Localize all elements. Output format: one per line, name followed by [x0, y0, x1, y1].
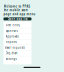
- staticText: Reports: [5, 40, 16, 44]
- button[interactable]: Reports: [3, 39, 31, 45]
- button[interactable]: Open app list: [3, 17, 31, 20]
- staticText: Expenses: [5, 29, 17, 33]
- staticText: Welcome to PPAS,: [3, 5, 30, 8]
- staticText: Open app list: [7, 17, 27, 21]
- staticText: page and app menu: [3, 12, 35, 16]
- staticText: the mobile start: [3, 8, 27, 12]
- staticText: Org chart: [5, 51, 17, 55]
- button[interactable]: Org chart: [3, 51, 31, 56]
- button[interactable]: Expenses: [3, 28, 31, 33]
- staticText: Travel requests: [4, 46, 24, 49]
- button[interactable]: Travel requests: [3, 45, 31, 50]
- staticText: Settings: [5, 57, 16, 61]
- staticText: Approvals: [5, 35, 18, 38]
- button[interactable]: Settings: [3, 56, 31, 61]
- button[interactable]: Time entry: [3, 23, 31, 28]
- staticText: Time entry: [5, 23, 19, 27]
- button[interactable]: Approvals: [3, 34, 31, 39]
